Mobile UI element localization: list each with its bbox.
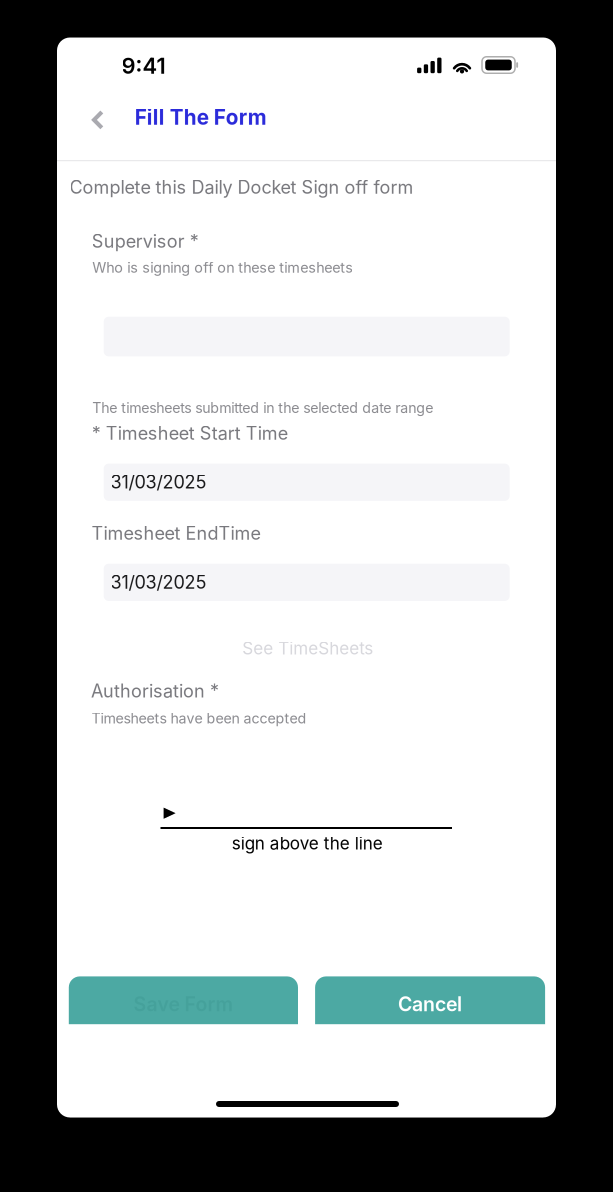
staticText: 31/03/2025: [111, 571, 207, 593]
button[interactable]: Timesheet end time: [104, 564, 510, 601]
staticText: Supervisor *: [92, 230, 199, 252]
button[interactable]: See TimeSheets: [242, 635, 373, 662]
staticText: Timesheets have been accepted: [92, 710, 307, 727]
staticText: Who is signing off on these timesheets: [92, 259, 353, 276]
staticText: Fill The Form: [135, 105, 267, 130]
staticText: Authorisation *: [91, 680, 219, 702]
staticText: 9:41: [122, 52, 166, 79]
button[interactable]: Back: [81, 101, 115, 139]
staticText: See TimeSheets: [242, 638, 373, 659]
staticText: 31/03/2025: [111, 471, 207, 493]
button[interactable]: Save Form: [69, 976, 298, 1024]
staticText: * Timesheet Start Time: [92, 422, 288, 444]
button[interactable]: Timesheet start time: [104, 464, 510, 501]
staticText: Complete this Daily Docket Sign off form: [70, 176, 414, 198]
staticText: Timesheet EndTime: [92, 522, 261, 544]
button[interactable]: Cancel: [315, 976, 545, 1024]
staticText: Cancel: [398, 992, 462, 1016]
staticText: sign above the line: [232, 833, 383, 854]
button[interactable]: Fill The Form: [133, 99, 269, 136]
staticText: The timesheets submitted in the selected…: [92, 399, 433, 416]
